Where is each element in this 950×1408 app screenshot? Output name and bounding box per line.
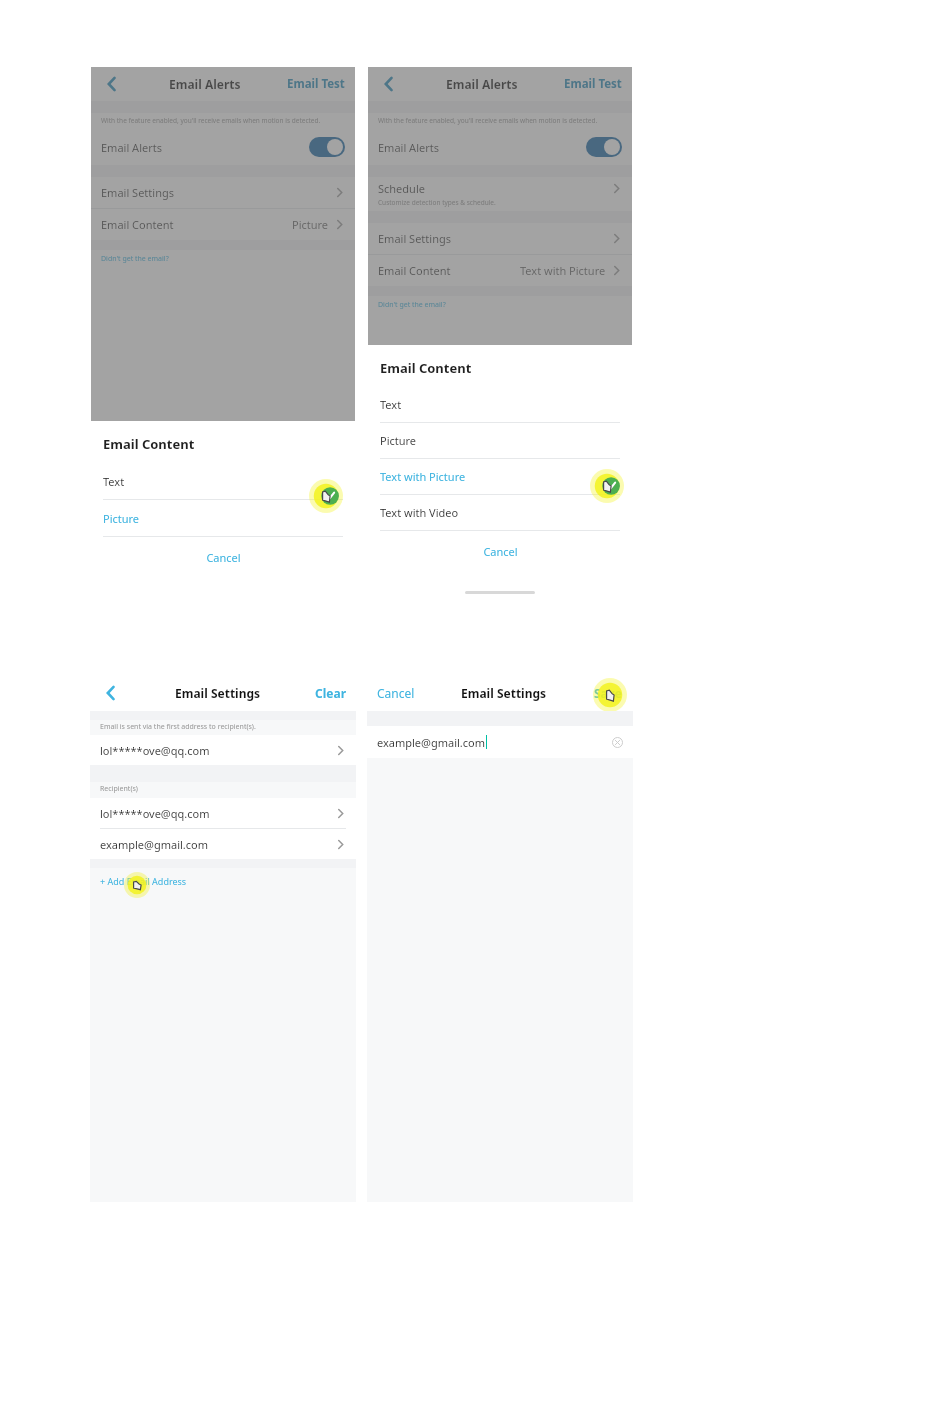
- button[interactable]: Text with Picture: [368, 459, 632, 494]
- button[interactable]: Cancel: [91, 537, 355, 577]
- button[interactable]: Save: [592, 685, 624, 701]
- staticText: Picture: [380, 433, 417, 448]
- staticText: Schedule: [378, 181, 425, 196]
- button[interactable]: lol*****ove@qq.com: [90, 735, 356, 765]
- button[interactable]: Picture: [91, 500, 355, 536]
- staticText: Email Settings: [461, 685, 547, 701]
- staticText: Text: [380, 397, 402, 412]
- button[interactable]: Picture: [368, 423, 632, 458]
- button[interactable]: + Add Email Address: [90, 871, 193, 891]
- staticText: Text: [103, 474, 125, 489]
- button[interactable]: Email Alerts toggle: [586, 137, 622, 157]
- staticText: Email Content: [101, 217, 174, 232]
- staticText: Email Test: [287, 76, 345, 92]
- staticText: Picture: [292, 217, 329, 232]
- staticText: Email Settings: [378, 231, 451, 246]
- staticText: Email Content: [378, 263, 451, 278]
- button[interactable]: Email Test: [285, 76, 347, 92]
- staticText: Email Content: [380, 359, 472, 377]
- staticText: Email Alerts: [101, 140, 162, 155]
- button[interactable]: Text: [91, 463, 355, 499]
- staticText: example@gmail.com: [100, 837, 209, 852]
- button[interactable]: Email Settings: [368, 223, 632, 254]
- button[interactable]: Email Alerts: [368, 129, 632, 165]
- staticText: Clear: [315, 685, 346, 701]
- button[interactable]: Email Test: [562, 76, 624, 92]
- button[interactable]: Schedule: [368, 177, 632, 211]
- staticText: lol*****ove@qq.com: [100, 806, 210, 821]
- staticText: Email is sent via the first address to r…: [100, 722, 256, 732]
- button[interactable]: Didn't get the email?: [101, 254, 169, 264]
- button[interactable]: Back: [98, 680, 124, 706]
- button[interactable]: Back: [99, 71, 125, 97]
- button[interactable]: Cancel: [375, 685, 417, 701]
- staticText: Email Settings: [101, 185, 174, 200]
- staticText: Email Alerts: [169, 76, 241, 92]
- staticText: Cancel: [483, 544, 518, 559]
- staticText: + Add Email Address: [100, 875, 187, 887]
- button[interactable]: Email Content: [91, 209, 355, 240]
- staticText: Email Alerts: [446, 76, 518, 92]
- button[interactable]: Email Alerts: [91, 129, 355, 165]
- button[interactable]: example@gmail.com: [90, 829, 356, 859]
- staticText: With the feature enabled, you'll receive…: [101, 116, 321, 125]
- staticText: Cancel: [206, 550, 241, 565]
- staticText: lol*****ove@qq.com: [100, 743, 210, 758]
- button[interactable]: Clear: [313, 685, 348, 701]
- staticText: Picture: [103, 511, 140, 526]
- staticText: Cancel: [377, 685, 415, 701]
- staticText: Text with Picture: [380, 469, 466, 484]
- staticText: Customize detection types & schedule.: [378, 198, 496, 207]
- staticText: Recipient(s): [100, 784, 138, 794]
- staticText: example@gmail.com: [377, 735, 486, 750]
- button[interactable]: Email Settings: [91, 177, 355, 208]
- button[interactable]: example@gmail.com: [367, 726, 633, 758]
- staticText: Email Content: [103, 435, 195, 453]
- staticText: Text with Picture: [520, 263, 606, 278]
- staticText: Text with Video: [380, 505, 459, 520]
- button[interactable]: Email Content: [368, 255, 632, 286]
- staticText: Email Settings: [175, 685, 261, 701]
- button[interactable]: Text with Video: [368, 495, 632, 530]
- button[interactable]: lol*****ove@qq.com: [90, 798, 356, 828]
- button[interactable]: Back: [376, 71, 402, 97]
- staticText: Email Alerts: [378, 140, 439, 155]
- staticText: With the feature enabled, you'll receive…: [378, 116, 598, 125]
- button[interactable]: Text: [368, 387, 632, 422]
- button[interactable]: Didn't get the email?: [378, 300, 446, 310]
- button[interactable]: Cancel: [368, 531, 632, 571]
- staticText: Email Test: [564, 76, 622, 92]
- staticText: Save: [594, 685, 622, 701]
- button[interactable]: Email Alerts toggle: [309, 137, 345, 157]
